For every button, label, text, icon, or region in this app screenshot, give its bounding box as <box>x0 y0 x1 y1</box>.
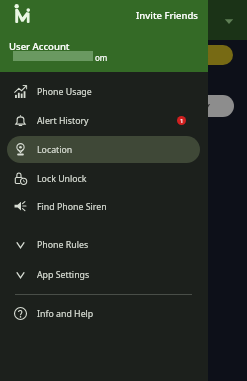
staticText: HISTORY <box>171 100 211 112</box>
staticText: om <box>95 52 108 63</box>
staticText: App Settings <box>37 269 90 281</box>
button[interactable]: Select device <box>223 15 235 27</box>
staticText: Invite Friends <box>136 9 198 22</box>
staticText: UPDATE <box>174 49 209 61</box>
staticText: Info and Help <box>37 308 94 320</box>
button[interactable]: Phone Usage <box>7 78 200 105</box>
staticText: Location <box>37 144 73 156</box>
button[interactable]: App Settings <box>7 262 200 288</box>
staticText: Alert History <box>37 115 89 127</box>
staticText: Phone Usage <box>37 86 92 98</box>
button[interactable]: Invite Friends <box>132 5 202 26</box>
staticText: 1 <box>180 117 184 125</box>
button[interactable]: Find Phone Siren <box>7 193 200 220</box>
staticText: Lock Unlock <box>37 173 87 185</box>
button[interactable]: HISTORY <box>148 95 234 117</box>
button[interactable]: UPDATE <box>150 45 233 65</box>
button[interactable]: Lock Unlock <box>7 165 200 192</box>
button[interactable]: Phone Rules <box>7 232 200 258</box>
staticText: User Account <box>9 40 70 53</box>
staticText: Phone Rules <box>37 239 89 251</box>
button[interactable]: Info and Help <box>7 300 200 327</box>
button[interactable]: Location <box>7 136 200 163</box>
button[interactable]: Alert History <box>7 107 200 134</box>
staticText: Find Phone Siren <box>37 201 107 213</box>
